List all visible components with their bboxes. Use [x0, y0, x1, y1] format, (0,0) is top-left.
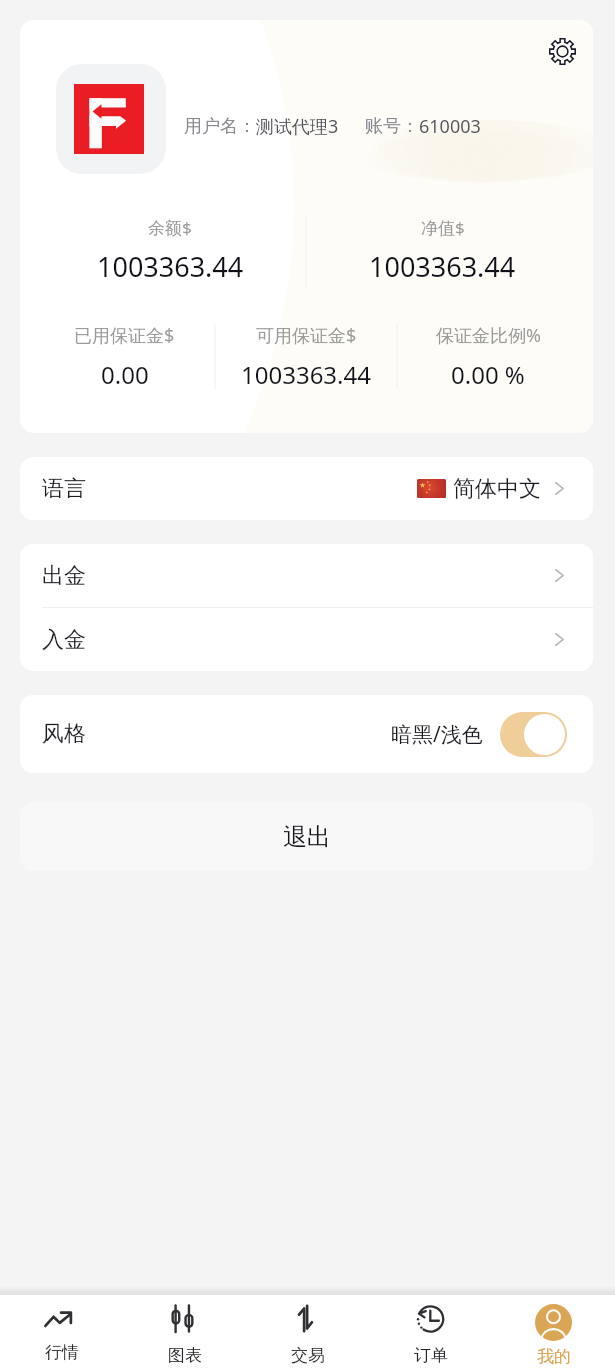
- button[interactable]: 入金: [20, 608, 593, 671]
- button[interactable]: 订单: [369, 1302, 492, 1368]
- staticText: 账号：: [365, 115, 419, 138]
- staticText: 保证金比例%: [436, 323, 541, 348]
- staticText: 1003363.44: [97, 248, 244, 285]
- button[interactable]: 我的: [492, 1302, 615, 1368]
- button[interactable]: 出金: [20, 544, 593, 607]
- staticText: 行情: [45, 1342, 79, 1363]
- staticText: 语言: [42, 475, 86, 503]
- staticText: 出金: [42, 562, 86, 590]
- staticText: 风格: [42, 720, 86, 748]
- button[interactable]: [500, 712, 567, 757]
- staticText: 1003363.44: [241, 358, 371, 391]
- staticText: 余额$: [148, 216, 192, 239]
- staticText: 退出: [283, 822, 331, 852]
- button[interactable]: 语言: [20, 457, 593, 520]
- staticText: 图表: [168, 1345, 202, 1366]
- staticText: 订单: [414, 1345, 448, 1366]
- staticText: 用户名：: [184, 115, 256, 138]
- staticText: 入金: [42, 626, 86, 654]
- button[interactable]: 退出: [20, 802, 593, 871]
- staticText: 测试代理3: [256, 114, 339, 139]
- button[interactable]: 行情: [0, 1302, 123, 1368]
- staticText: 1003363.44: [369, 248, 516, 285]
- staticText: 我的: [537, 1346, 571, 1367]
- staticText: 交易: [291, 1345, 325, 1366]
- staticText: 0.00 %: [451, 358, 525, 391]
- staticText: 简体中文: [453, 475, 541, 503]
- staticText: 暗黑/浅色: [391, 720, 483, 749]
- staticText: 已用保证金$: [74, 323, 175, 348]
- staticText: 可用保证金$: [256, 323, 357, 348]
- staticText: 610003: [419, 114, 481, 139]
- staticText: 0.00: [101, 358, 149, 391]
- button[interactable]: Settings: [539, 28, 585, 74]
- button[interactable]: 交易: [246, 1302, 369, 1368]
- button[interactable]: 图表: [123, 1302, 246, 1368]
- button[interactable]: 风格: [20, 695, 593, 773]
- staticText: 净值$: [421, 216, 465, 239]
